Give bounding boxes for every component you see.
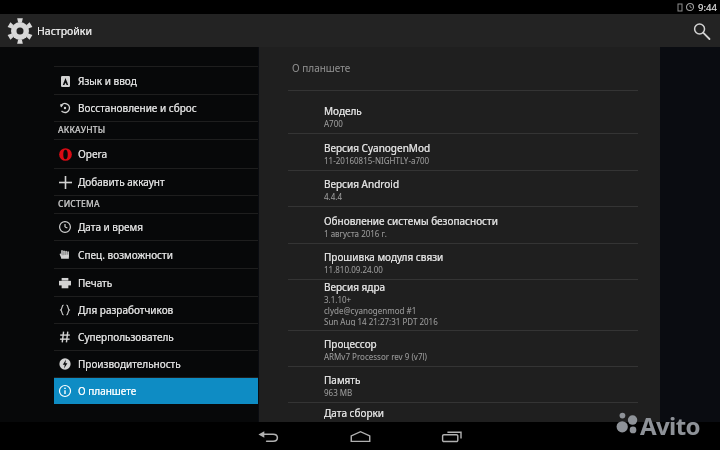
staticText: A700 [324, 118, 343, 129]
button[interactable]: Версия CyanogenMod [259, 134, 660, 170]
button[interactable]: Память [259, 367, 660, 402]
staticText: Память [324, 373, 361, 387]
staticText: Язык и ввод [78, 74, 137, 88]
button[interactable]: Версия ядра [259, 280, 660, 330]
button[interactable]: Язык и ввод [54, 67, 258, 94]
staticText: 3.1.10+ [324, 294, 352, 305]
staticText: Версия ядра [324, 280, 386, 294]
staticText: Печать [78, 276, 113, 290]
button[interactable]: Opera [54, 140, 258, 168]
staticText: СИСТЕМА [58, 198, 100, 210]
button[interactable]: Обновление системы безопасности [259, 207, 660, 243]
staticText: Модель [324, 104, 362, 118]
button[interactable]: Печать [54, 269, 258, 296]
button[interactable]: Процессор [259, 331, 660, 366]
staticText: Opera [78, 147, 108, 161]
button[interactable]: Спец. возможности [54, 241, 258, 268]
button[interactable]: Прошивка модуля связи [259, 244, 660, 279]
staticText: Восстановление и сброс [78, 101, 197, 115]
button[interactable]: Модель [259, 91, 660, 133]
staticText: Процессор [324, 337, 377, 351]
button[interactable]: Суперпользователь [54, 324, 258, 350]
button[interactable]: Back [222, 422, 314, 450]
staticText: Обновление системы безопасности [324, 214, 498, 228]
button[interactable]: Восстановление и сброс [54, 95, 258, 121]
staticText: 11-20160815-NIGHTLY-a700 [324, 155, 430, 166]
staticText: Дата и время [78, 220, 144, 234]
button[interactable]: Search [682, 14, 720, 47]
button[interactable]: Версия Android [259, 171, 660, 206]
staticText: Дата сборки [324, 406, 384, 420]
staticText: Sun Aug 14 21:27:31 PDT 2016 [324, 316, 438, 326]
button[interactable]: Дата и время [54, 214, 258, 240]
staticText: Версия Android [324, 177, 400, 191]
button[interactable]: Дата сборки [259, 403, 660, 422]
button[interactable]: Для разработчиков [54, 297, 258, 323]
button[interactable]: Производительность [54, 351, 258, 377]
staticText: Спец. возможности [78, 248, 173, 262]
staticText: Добавить аккаунт [78, 175, 165, 189]
button[interactable]: О планшете [54, 378, 258, 404]
staticText: АККАУНТЫ [58, 124, 106, 136]
staticText: ARMv7 Processor rev 9 (v7l) [324, 351, 427, 362]
staticText: Настройки [37, 24, 92, 38]
button[interactable]: Home [314, 422, 406, 450]
staticText: clyde@cyanogenmod #1 [324, 305, 417, 316]
staticText: Для разработчиков [78, 303, 174, 317]
staticText: О планшете [292, 61, 351, 75]
staticText: 4.4.4 [324, 191, 343, 202]
staticText: Производительность [78, 357, 181, 371]
staticText: 11.810.09.24.00 [324, 264, 383, 275]
staticText: Версия CyanogenMod [324, 141, 431, 155]
staticText: Avito [640, 409, 700, 435]
staticText: 9:44 [698, 1, 717, 14]
staticText: Суперпользователь [78, 330, 174, 344]
staticText: Прошивка модуля связи [324, 250, 444, 264]
staticText: 1 августа 2016 г. [324, 228, 387, 239]
staticText: О планшете [78, 384, 137, 398]
button[interactable]: Добавить аккаунт [54, 169, 258, 195]
staticText: 963 MB [324, 387, 353, 398]
button[interactable]: Recents [406, 422, 498, 450]
